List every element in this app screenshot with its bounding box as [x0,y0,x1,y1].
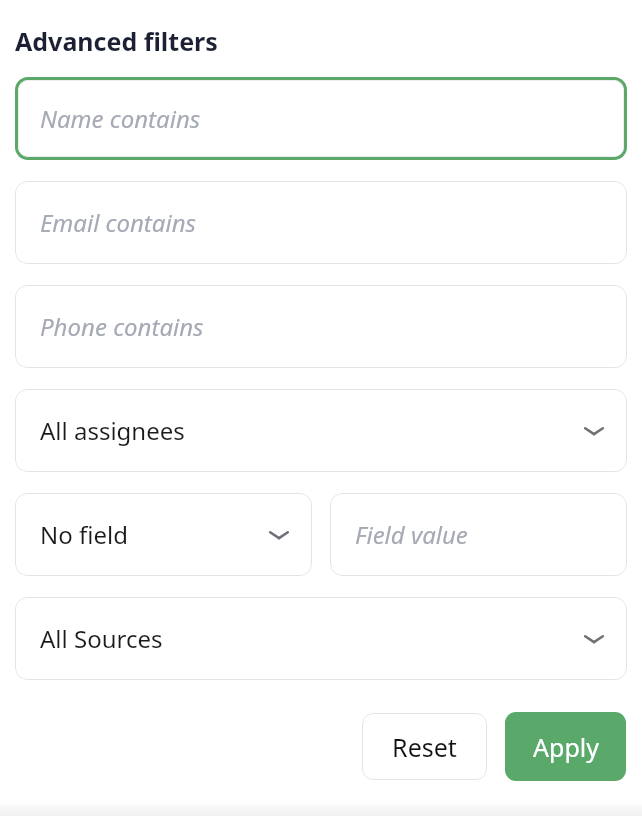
button[interactable]: Name contains [18,80,624,157]
button[interactable]: Field value [330,493,627,576]
button[interactable]: Apply [505,712,626,781]
staticText: Advanced filters [15,24,218,58]
staticText: Reset [392,730,457,764]
button[interactable]: Phone contains [15,285,627,368]
button[interactable]: No field [15,493,312,576]
staticText: All Sources [40,622,163,655]
other: Open No field menu [266,527,292,543]
other: Open All Sources menu [581,631,607,647]
staticText: No field [40,518,128,551]
staticText: All assignees [40,414,185,447]
button[interactable]: All assignees [15,389,627,472]
staticText: Apply [533,730,599,764]
staticText: Phone contains [40,310,204,343]
button[interactable]: All Sources [15,597,627,680]
other: Open All assignees menu [581,423,607,439]
button[interactable]: Email contains [15,181,627,264]
staticText: Name contains [40,102,201,135]
button[interactable]: Reset [362,713,487,780]
staticText: Field value [355,518,468,551]
staticText: Email contains [40,206,196,239]
